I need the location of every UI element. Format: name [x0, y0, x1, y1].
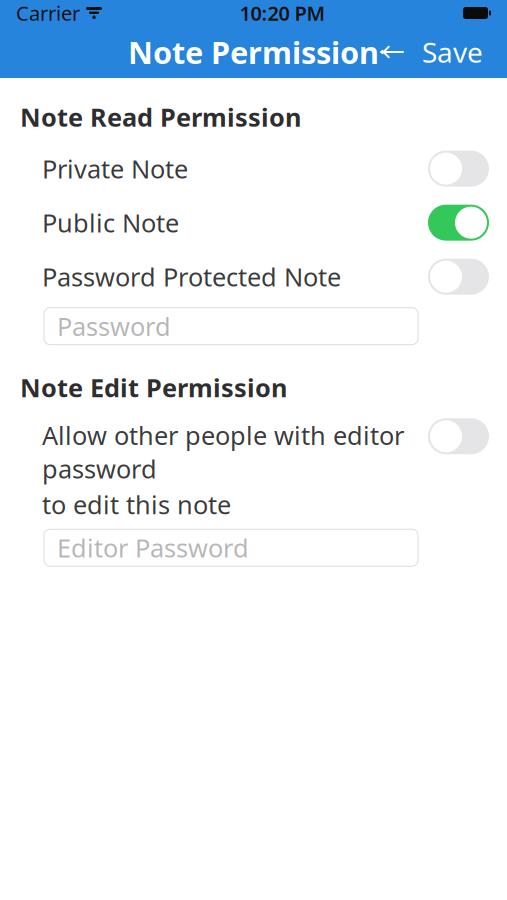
staticText: Editor Password: [57, 531, 249, 564]
staticText: Note Read Permission: [20, 100, 301, 134]
button[interactable]: Private Note: [0, 150, 507, 188]
staticText: Note Edit Permission: [20, 371, 287, 404]
button[interactable]: Save: [414, 30, 491, 74]
staticText: to edit this note: [42, 488, 231, 521]
button[interactable]: Back: [370, 30, 414, 74]
staticText: Note Permission: [128, 32, 379, 72]
button[interactable]: Password: [44, 308, 418, 345]
staticText: 10:20 PM: [239, 0, 325, 26]
button[interactable]: Public Note: [0, 204, 507, 242]
staticText: Save: [422, 33, 483, 71]
button[interactable]: Editor Password: [44, 529, 418, 566]
staticText: Private Note: [42, 152, 188, 185]
button[interactable]: Allow other people with editor password: [0, 418, 507, 521]
staticText: Password Protected Note: [42, 260, 341, 293]
staticText: Allow other people with editor password: [42, 418, 404, 486]
staticText: Carrier: [16, 0, 80, 26]
staticText: Public Note: [42, 206, 179, 239]
button[interactable]: Password Protected Note: [0, 258, 507, 296]
staticText: Password: [57, 309, 171, 343]
